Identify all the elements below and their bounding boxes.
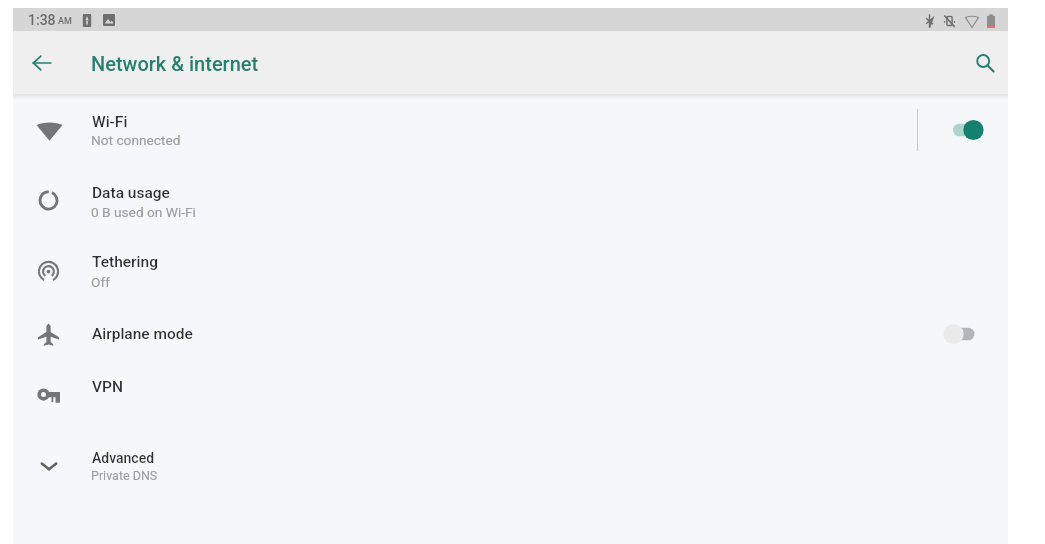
button[interactable]: Tethering bbox=[13, 237, 1008, 307]
staticText: VPN bbox=[92, 378, 123, 396]
staticText: Off bbox=[91, 274, 110, 290]
staticText: Data usage bbox=[92, 184, 170, 202]
button[interactable]: Back bbox=[18, 39, 66, 87]
button[interactable]: Wi-Fi bbox=[13, 97, 1008, 167]
staticText: Airplane mode bbox=[92, 325, 193, 343]
staticText: Network & internet bbox=[91, 52, 259, 75]
staticText: Private DNS bbox=[91, 468, 158, 483]
button[interactable]: Airplane mode toggle bbox=[944, 316, 996, 352]
staticText: Not connected bbox=[91, 132, 181, 148]
button[interactable]: Search bbox=[961, 39, 1009, 87]
button[interactable]: Advanced bbox=[13, 430, 1008, 500]
button[interactable]: Wi-Fi toggle bbox=[944, 112, 996, 148]
staticText: 0 B used on Wi-Fi bbox=[91, 204, 196, 220]
staticText: Advanced bbox=[92, 450, 155, 466]
button[interactable]: Airplane mode bbox=[13, 306, 1008, 364]
button[interactable]: VPN bbox=[13, 358, 1008, 416]
staticText: Wi-Fi bbox=[92, 113, 128, 131]
staticText: 1:38 bbox=[28, 12, 56, 28]
button[interactable]: Data usage bbox=[13, 167, 1008, 237]
staticText: Tethering bbox=[92, 253, 158, 271]
staticText: AM bbox=[58, 16, 72, 27]
